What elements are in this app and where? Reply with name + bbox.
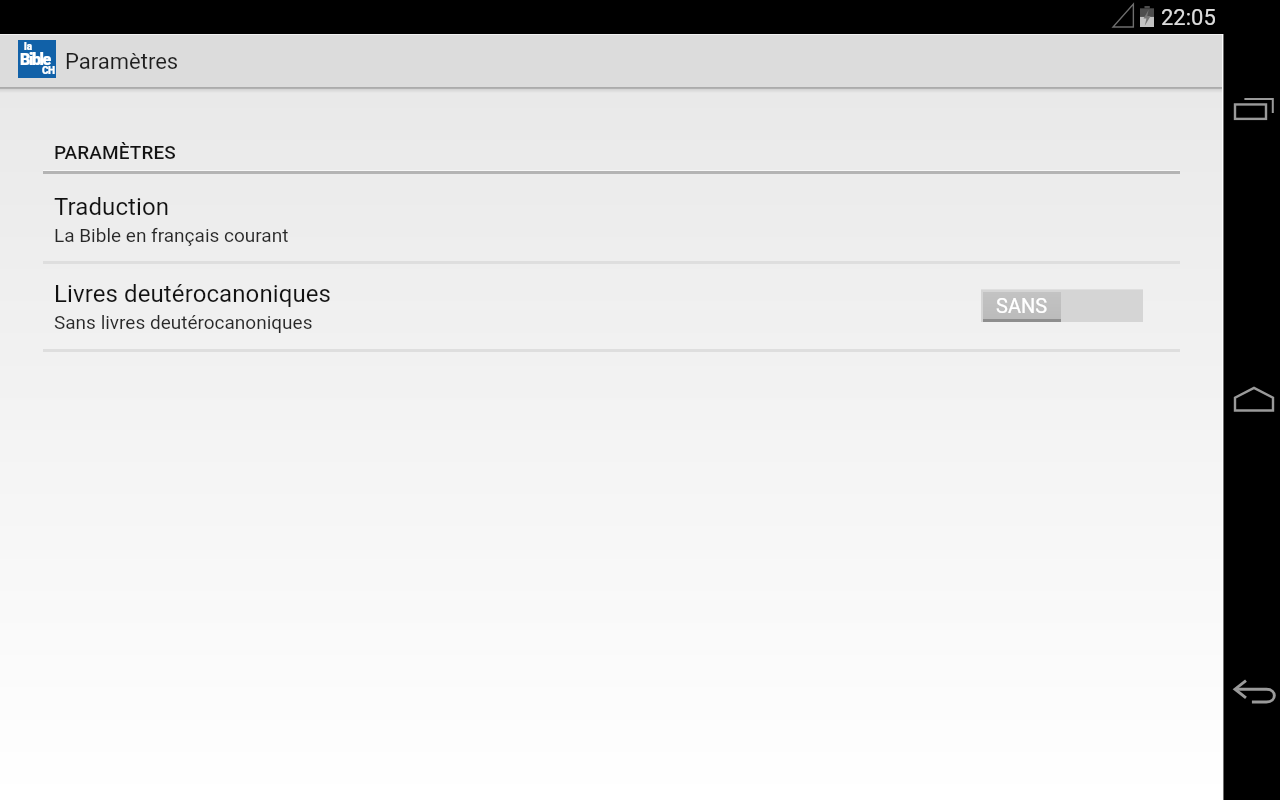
button[interactable]: Recent apps bbox=[1226, 81, 1280, 137]
button[interactable]: Back bbox=[1227, 666, 1280, 722]
staticText: Paramètres bbox=[65, 49, 179, 75]
staticText: Sans livres deutérocanoniques bbox=[54, 311, 313, 333]
button[interactable]: Home bbox=[1226, 371, 1280, 427]
staticText: Traduction bbox=[54, 193, 170, 221]
staticText: la bbox=[24, 41, 33, 53]
button[interactable]: Livres deutérocanoniques bbox=[0, 268, 1224, 348]
button[interactable]: Livres deutérocanoniques : sans bbox=[981, 289, 1143, 322]
button[interactable]: Traduction bbox=[0, 181, 1224, 261]
staticText: La Bible en français courant bbox=[54, 224, 289, 246]
button[interactable]: La Bible CH bbox=[18, 40, 56, 78]
staticText: PARAMÈTRES bbox=[54, 141, 176, 163]
staticText: 22:05 bbox=[1161, 5, 1216, 31]
staticText: CH bbox=[42, 65, 55, 77]
staticText: Livres deutérocanoniques bbox=[54, 280, 332, 308]
staticText: SANS bbox=[996, 294, 1048, 317]
staticText: Bible bbox=[20, 50, 50, 69]
